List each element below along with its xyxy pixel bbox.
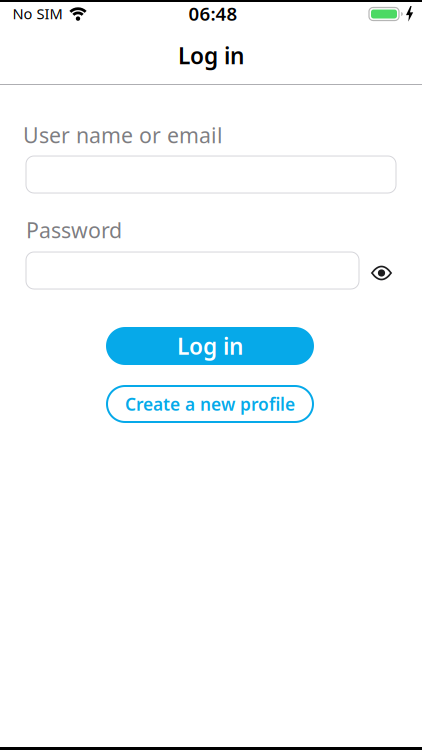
staticText: No SIM	[12, 4, 62, 23]
staticText: 06:48	[188, 1, 237, 26]
button[interactable]: Create a new profile	[107, 386, 313, 422]
staticText: Log in	[177, 331, 243, 361]
button[interactable]: Show password	[371, 266, 392, 280]
button[interactable]: Password	[26, 252, 359, 289]
staticText: User name or email	[23, 121, 223, 149]
staticText: Create a new profile	[125, 392, 295, 415]
button[interactable]: User name or email	[26, 156, 396, 193]
button[interactable]: Log in	[106, 327, 314, 365]
staticText: Log in	[178, 40, 244, 70]
staticText: Password	[26, 216, 122, 244]
